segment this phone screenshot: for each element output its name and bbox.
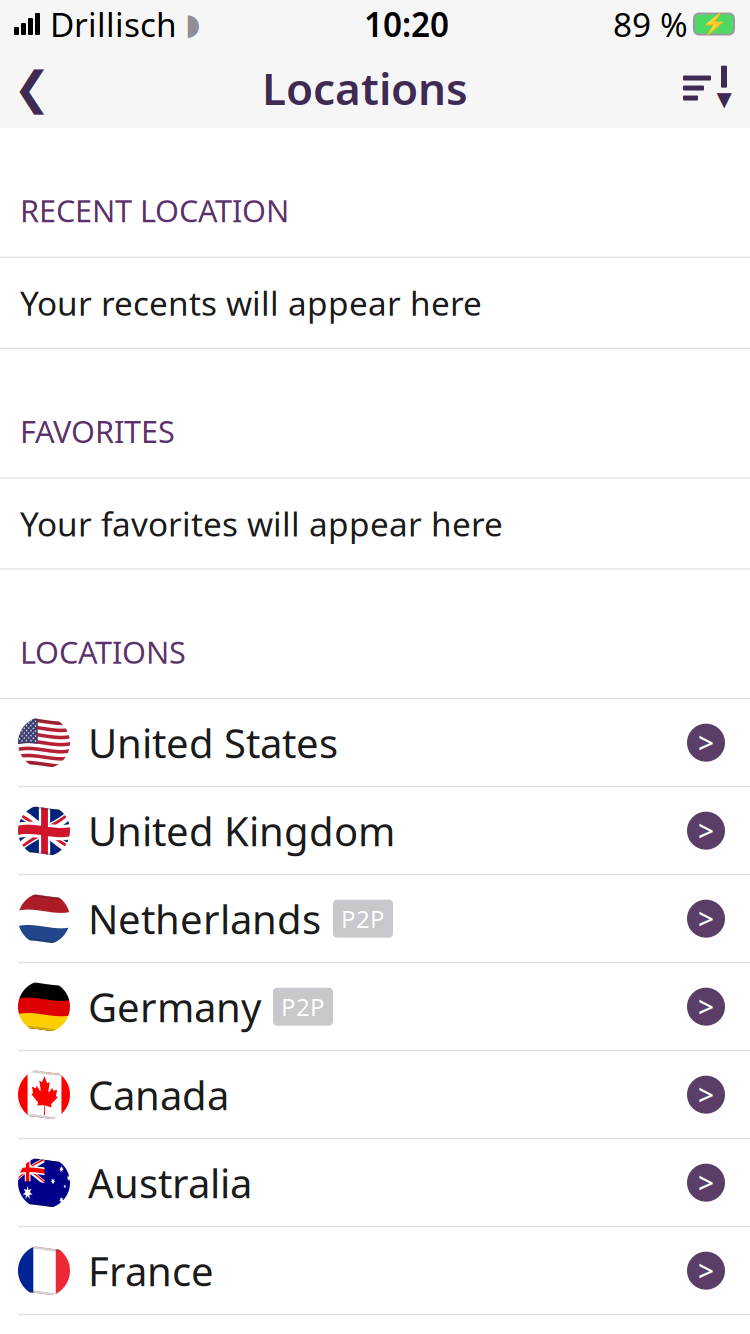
staticText: Drillisch <box>50 2 177 46</box>
staticText: United States <box>88 716 338 769</box>
staticText: 🇦🇺 <box>7 1149 80 1216</box>
staticText: 🇳🇱 <box>7 885 80 952</box>
staticText: 🇫🇷 <box>7 1237 80 1304</box>
staticText: 🇩🇪 <box>7 973 80 1040</box>
staticText: ⚡ <box>700 12 727 36</box>
staticText: Netherlands <box>88 892 321 945</box>
staticText: France <box>88 1244 214 1297</box>
button[interactable]: 🇦🇺 <box>0 1139 750 1227</box>
button[interactable]: 🇬🇧 <box>0 787 750 875</box>
staticText: P2P <box>341 903 385 935</box>
staticText: > <box>698 988 714 1025</box>
button[interactable]: Back <box>2 58 62 118</box>
staticText: RECENT LOCATION <box>20 190 289 231</box>
staticText: ❮ <box>13 62 51 114</box>
staticText: Locations <box>262 59 468 117</box>
button[interactable]: 🇩🇪 <box>0 963 750 1051</box>
staticText: Your favorites will appear here <box>20 501 503 546</box>
staticText: > <box>698 1076 714 1113</box>
staticText: ▼ <box>716 88 731 110</box>
staticText: Australia <box>88 1156 252 1209</box>
staticText: > <box>698 900 714 937</box>
button[interactable]: 🇫🇷 <box>0 1227 750 1315</box>
staticText: Canada <box>88 1068 229 1121</box>
button[interactable]: 🇨🇦 <box>0 1051 750 1139</box>
staticText: Your recents will appear here <box>20 281 482 325</box>
staticText: 🇨🇦 <box>7 1061 80 1128</box>
staticText: > <box>698 812 714 849</box>
staticText: > <box>698 1252 714 1289</box>
button[interactable]: 🇺🇸 <box>0 699 750 787</box>
staticText: 🇬🇧 <box>7 797 80 864</box>
staticText: ◗ <box>185 7 200 41</box>
staticText: P2P <box>281 991 325 1023</box>
staticText: United Kingdom <box>88 804 395 857</box>
staticText: 10:20 <box>364 2 449 46</box>
staticText: > <box>698 1164 714 1201</box>
staticText: 89 % <box>613 2 688 46</box>
button[interactable]: Sort <box>668 58 748 118</box>
staticText: Germany <box>88 980 261 1033</box>
button[interactable]: 🇳🇱 <box>0 875 750 963</box>
staticText: 🇺🇸 <box>7 709 80 776</box>
staticText: > <box>698 724 714 761</box>
staticText: FAVORITES <box>20 411 175 451</box>
staticText: LOCATIONS <box>20 631 186 672</box>
